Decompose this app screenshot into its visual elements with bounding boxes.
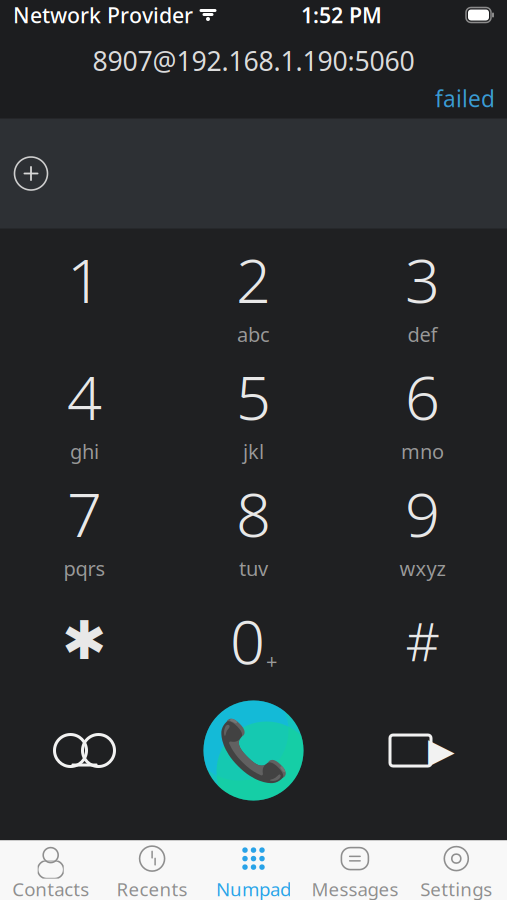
staticText: abc bbox=[237, 321, 270, 348]
button[interactable]: Pound bbox=[338, 585, 507, 695]
button[interactable]: 6 bbox=[338, 351, 507, 468]
staticText: 4 bbox=[67, 355, 102, 437]
button[interactable]: 2 bbox=[169, 234, 338, 351]
button[interactable]: Numpad bbox=[203, 846, 304, 900]
button[interactable]: Messages bbox=[304, 846, 406, 900]
staticText: jkl bbox=[243, 438, 264, 465]
button[interactable]: 8 bbox=[169, 468, 338, 585]
staticText: 3 bbox=[405, 238, 440, 320]
button[interactable]: Call bbox=[169, 695, 338, 805]
staticText: + bbox=[266, 648, 277, 674]
staticText: 0 bbox=[230, 600, 265, 681]
staticText: Recents bbox=[117, 877, 188, 900]
button[interactable]: 7 bbox=[0, 468, 169, 585]
button[interactable]: Add contact bbox=[5, 147, 57, 199]
staticText: 8 bbox=[236, 472, 271, 554]
staticText: Messages bbox=[311, 877, 398, 900]
staticText: 1 bbox=[67, 238, 102, 320]
staticText: 9 bbox=[405, 472, 440, 554]
button[interactable]: Video call bbox=[338, 695, 507, 805]
button[interactable]: Voicemail bbox=[0, 695, 169, 805]
button[interactable]: 1 bbox=[0, 234, 169, 351]
staticText: 8907@192.168.1.190:5060 bbox=[92, 43, 414, 78]
staticText: 7 bbox=[67, 472, 102, 554]
staticText: Network Provider bbox=[13, 1, 193, 29]
staticText: Numpad bbox=[216, 877, 291, 900]
button[interactable]: 3 bbox=[338, 234, 507, 351]
staticText: # bbox=[405, 605, 439, 676]
staticText: failed bbox=[435, 83, 495, 113]
staticText: 6 bbox=[405, 355, 440, 437]
staticText: def bbox=[407, 321, 437, 348]
staticText: mno bbox=[401, 438, 444, 465]
button[interactable]: 9 bbox=[338, 468, 507, 585]
button[interactable]: 4 bbox=[0, 351, 169, 468]
staticText: 📞 bbox=[217, 717, 290, 784]
button[interactable]: Star bbox=[0, 585, 169, 695]
staticText: tuv bbox=[239, 555, 268, 582]
staticText: ghi bbox=[70, 438, 99, 465]
button[interactable]: Recents bbox=[101, 846, 203, 900]
button[interactable]: 5 bbox=[169, 351, 338, 468]
button[interactable]: 0 bbox=[169, 585, 338, 695]
staticText: 1:52 PM bbox=[301, 1, 382, 29]
staticText: 2 bbox=[236, 238, 271, 320]
button[interactable]: Settings bbox=[406, 846, 507, 900]
staticText: pqrs bbox=[63, 555, 105, 582]
staticText: wxyz bbox=[399, 555, 445, 582]
staticText: Contacts bbox=[12, 877, 89, 900]
staticText: Settings bbox=[420, 877, 492, 900]
staticText: 5 bbox=[236, 355, 271, 437]
staticText: ▶ bbox=[428, 731, 455, 770]
staticText: ✱ bbox=[62, 610, 107, 671]
button[interactable]: Contacts bbox=[0, 846, 101, 900]
